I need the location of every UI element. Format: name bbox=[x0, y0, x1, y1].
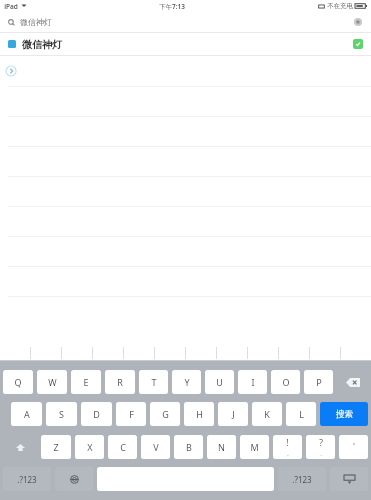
staticText: , bbox=[287, 449, 289, 457]
button[interactable]: A bbox=[11, 402, 42, 426]
staticText: .?123 bbox=[292, 474, 312, 485]
staticText: ? bbox=[319, 437, 323, 449]
button[interactable]: J bbox=[218, 402, 248, 426]
button[interactable]: Backspace bbox=[337, 370, 368, 394]
staticText: U bbox=[216, 376, 223, 388]
button[interactable]: 搜索 bbox=[320, 402, 368, 426]
button[interactable]: S bbox=[46, 402, 77, 426]
button[interactable]: K bbox=[252, 402, 282, 426]
button[interactable]: N bbox=[207, 435, 236, 459]
staticText: G bbox=[162, 408, 169, 420]
staticText: T bbox=[151, 376, 157, 388]
button[interactable]: L bbox=[286, 402, 316, 426]
staticText: H bbox=[196, 408, 203, 420]
button[interactable]: Switch language bbox=[55, 467, 93, 491]
button[interactable]: Y bbox=[172, 370, 201, 394]
button[interactable] bbox=[279, 345, 309, 361]
staticText: A bbox=[24, 408, 30, 420]
button[interactable]: .?123 bbox=[278, 467, 326, 491]
button[interactable]: E bbox=[71, 370, 101, 394]
staticText: ' bbox=[353, 441, 355, 453]
staticText: W bbox=[48, 376, 57, 388]
button[interactable]: V bbox=[141, 435, 170, 459]
staticText: ! bbox=[286, 437, 289, 449]
staticText: J bbox=[232, 408, 235, 420]
staticText: 微信神灯 bbox=[22, 38, 62, 51]
staticText: C bbox=[120, 441, 126, 453]
staticText: 不在充电 bbox=[327, 2, 353, 10]
button[interactable]: 微信神灯 bbox=[0, 12, 371, 32]
staticText: 微信神灯 bbox=[20, 17, 52, 27]
staticText: Z bbox=[53, 441, 59, 453]
staticText: F bbox=[129, 408, 134, 420]
staticText: B bbox=[186, 441, 192, 453]
button[interactable]: F bbox=[116, 402, 146, 426]
staticText: Q bbox=[14, 376, 22, 388]
button[interactable]: R bbox=[105, 370, 135, 394]
button[interactable]: I bbox=[238, 370, 267, 394]
button[interactable] bbox=[217, 345, 247, 361]
button[interactable]: Hide keyboard bbox=[330, 467, 368, 491]
button[interactable] bbox=[248, 345, 278, 361]
staticText: N bbox=[218, 441, 225, 453]
button[interactable]: Shift bbox=[3, 435, 37, 459]
button[interactable]: G bbox=[150, 402, 180, 426]
button[interactable] bbox=[93, 345, 123, 361]
staticText: R bbox=[117, 376, 123, 388]
button[interactable]: Clear search bbox=[353, 17, 363, 27]
button[interactable]: ! bbox=[273, 435, 302, 459]
button[interactable] bbox=[341, 345, 371, 361]
staticText: O bbox=[282, 376, 290, 388]
staticText: X bbox=[87, 441, 93, 453]
button[interactable]: T bbox=[139, 370, 168, 394]
staticText: 下午7:13 bbox=[159, 2, 185, 11]
button[interactable] bbox=[62, 345, 92, 361]
button[interactable]: D bbox=[81, 402, 112, 426]
button[interactable] bbox=[124, 345, 154, 361]
staticText: M bbox=[250, 441, 259, 453]
button[interactable]: H bbox=[184, 402, 214, 426]
staticText: 搜索 bbox=[336, 409, 353, 420]
staticText: S bbox=[59, 408, 64, 420]
button[interactable]: M bbox=[240, 435, 269, 459]
button[interactable]: ? bbox=[306, 435, 335, 459]
staticText: I bbox=[251, 376, 255, 388]
button[interactable] bbox=[0, 345, 30, 361]
staticText: Y bbox=[184, 376, 190, 388]
button[interactable] bbox=[310, 345, 340, 361]
staticText: K bbox=[264, 408, 270, 420]
staticText: iPad bbox=[4, 2, 18, 11]
button[interactable]: W bbox=[37, 370, 67, 394]
button[interactable]: O bbox=[271, 370, 300, 394]
button[interactable]: 微信神灯 bbox=[0, 33, 371, 55]
staticText: D bbox=[93, 408, 100, 420]
button[interactable]: U bbox=[205, 370, 234, 394]
button[interactable] bbox=[155, 345, 185, 361]
staticText: L bbox=[299, 408, 304, 420]
button[interactable] bbox=[31, 345, 61, 361]
button[interactable]: Q bbox=[3, 370, 33, 394]
other: Loading bbox=[4, 64, 18, 78]
button[interactable] bbox=[186, 345, 216, 361]
button[interactable]: .?123 bbox=[3, 467, 51, 491]
other: Verified bbox=[353, 39, 363, 49]
staticText: . bbox=[320, 449, 322, 457]
staticText: V bbox=[153, 441, 159, 453]
button[interactable]: Z bbox=[41, 435, 71, 459]
staticText: P bbox=[316, 376, 322, 388]
button[interactable]: B bbox=[174, 435, 203, 459]
button[interactable]: C bbox=[108, 435, 137, 459]
button[interactable]: X bbox=[75, 435, 104, 459]
staticText: E bbox=[83, 376, 89, 388]
button[interactable]: ' bbox=[339, 435, 368, 459]
staticText: .?123 bbox=[17, 474, 37, 485]
button[interactable]: P bbox=[304, 370, 333, 394]
